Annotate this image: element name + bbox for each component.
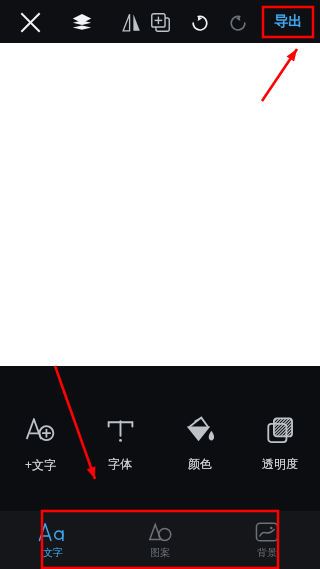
button[interactable]: Mirror bbox=[111, 2, 151, 42]
staticText: 透明度 bbox=[262, 456, 298, 471]
button[interactable]: 颜色 bbox=[160, 366, 240, 511]
button[interactable]: 透明度 bbox=[240, 366, 320, 511]
button[interactable]: Redo bbox=[218, 2, 258, 42]
button[interactable]: Undo bbox=[180, 2, 220, 42]
button[interactable]: 背景 bbox=[213, 511, 320, 569]
button[interactable]: 图案 bbox=[106, 511, 213, 569]
button[interactable]: 导出 bbox=[263, 7, 313, 37]
staticText: 图案 bbox=[150, 546, 170, 559]
button[interactable]: 字体 bbox=[80, 366, 160, 511]
staticText: 文字 bbox=[43, 546, 63, 559]
staticText: 字体 bbox=[108, 456, 132, 471]
button[interactable]: Layers bbox=[62, 2, 102, 42]
button[interactable]: +文字 bbox=[0, 366, 80, 511]
staticText: +文字 bbox=[25, 456, 56, 472]
button[interactable]: 文字 bbox=[0, 511, 106, 569]
button[interactable]: Close bbox=[10, 2, 50, 42]
staticText: 导出 bbox=[274, 13, 302, 31]
button[interactable]: Duplicate bbox=[140, 2, 180, 42]
staticText: 背景 bbox=[257, 546, 277, 559]
staticText: 颜色 bbox=[188, 456, 212, 471]
